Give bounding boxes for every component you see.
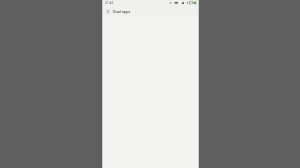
staticText: 21:44 xyxy=(105,1,114,5)
button[interactable]: Back xyxy=(102,7,113,16)
other: Status icons xyxy=(102,0,199,7)
staticText: Dual apps xyxy=(113,9,131,14)
